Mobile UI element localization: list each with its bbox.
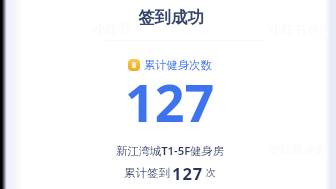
staticText: 累计健身次数 (144, 58, 212, 72)
staticText: 小红书 @健身 (269, 21, 336, 37)
other: 奖章 (128, 59, 140, 71)
button[interactable]: 奖章 (40, 50, 300, 185)
staticText: 127 (125, 66, 215, 137)
staticText: 累计签到 (124, 166, 170, 180)
staticText: 次 (206, 166, 216, 179)
staticText: 127 (172, 162, 204, 185)
staticText: 新江湾城T1-5F健身房 (116, 143, 225, 158)
staticText: 签到成功 (138, 7, 204, 28)
